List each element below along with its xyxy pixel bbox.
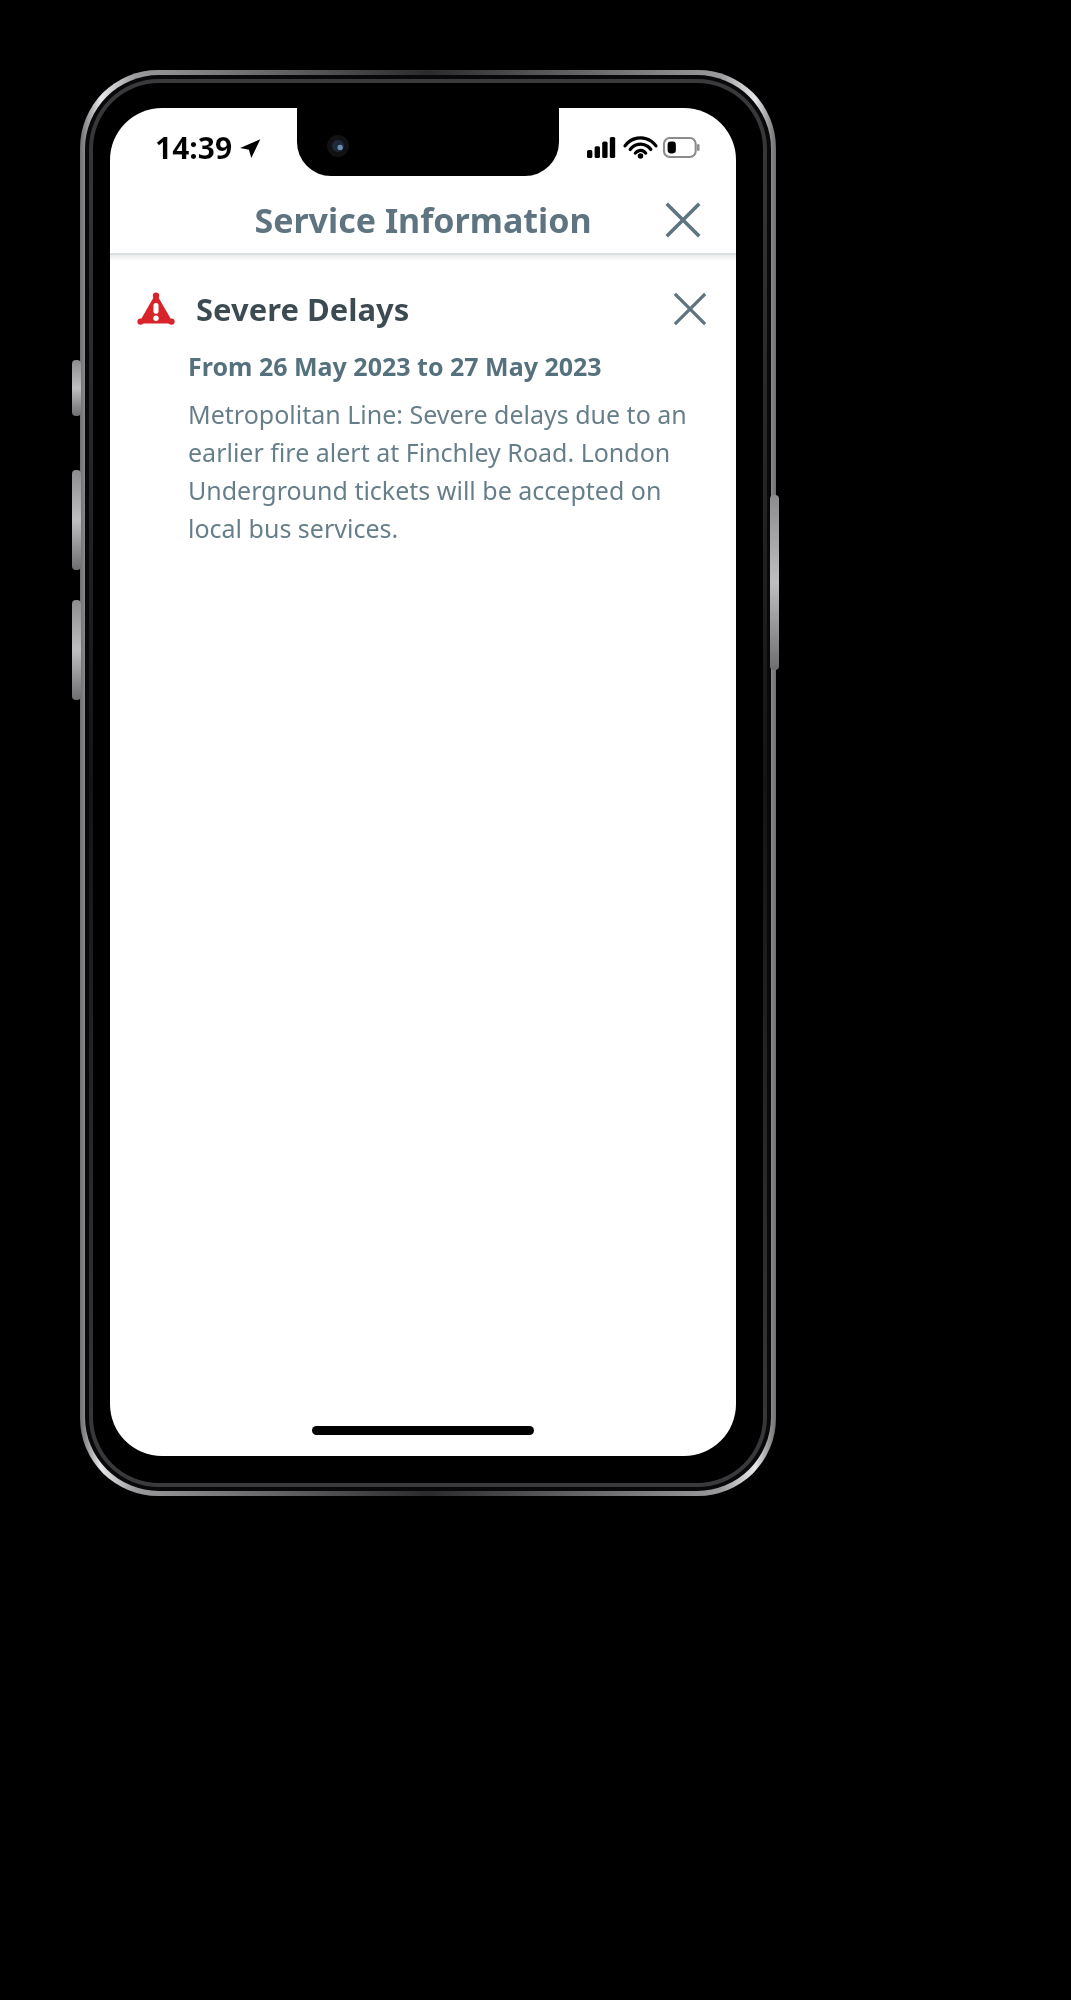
staticText: Service Information (254, 197, 592, 243)
button[interactable]: Close Service Information (656, 193, 710, 247)
staticText: Severe Delays (196, 288, 410, 330)
staticText: Metropolitan Line: Severe delays due to … (188, 397, 702, 545)
staticText: From 26 May 2023 to 27 May 2023 (188, 349, 602, 383)
staticText: 14:39 (155, 127, 233, 168)
button[interactable]: Dismiss Severe Delays alert (664, 283, 716, 335)
